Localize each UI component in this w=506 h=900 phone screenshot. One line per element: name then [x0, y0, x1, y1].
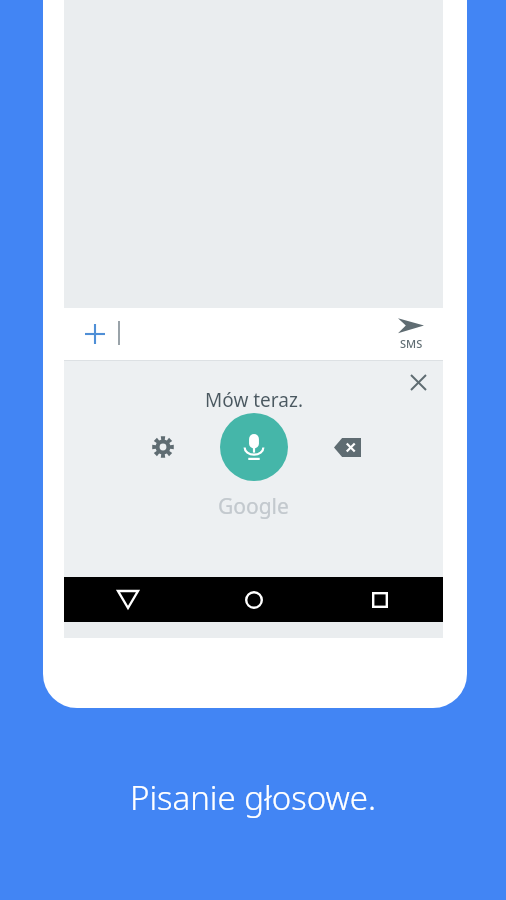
- button[interactable]: Back: [64, 577, 191, 622]
- button[interactable]: Voice input settings: [141, 425, 185, 469]
- staticText: Google: [218, 492, 289, 521]
- button[interactable]: Send SMS: [387, 317, 435, 351]
- button[interactable]: Home: [191, 577, 317, 622]
- button[interactable]: Add attachment: [74, 313, 116, 355]
- button[interactable]: Close voice input: [399, 363, 437, 401]
- button[interactable]: Microphone: [220, 413, 288, 481]
- staticText: Mów teraz.: [205, 387, 303, 413]
- button[interactable]: Backspace: [325, 425, 369, 469]
- staticText: SMS: [400, 336, 423, 351]
- staticText: Pisanie głosowe.: [130, 775, 376, 820]
- button[interactable]: Recent apps: [317, 577, 443, 622]
